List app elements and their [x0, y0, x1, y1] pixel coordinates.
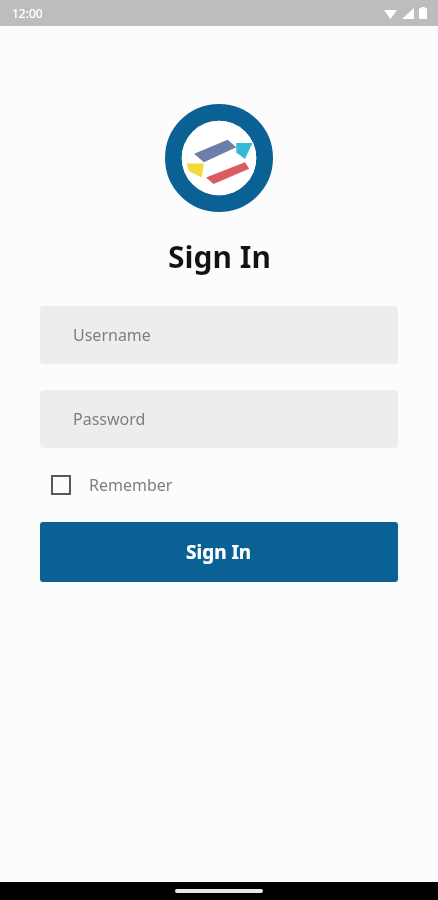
- staticText: Sign In: [186, 539, 252, 565]
- button[interactable]: Remember: [40, 468, 398, 502]
- staticText: Remember: [89, 474, 173, 496]
- staticText: Sign In: [168, 236, 271, 277]
- staticText: Password: [73, 408, 146, 430]
- other: Home gesture bar: [0, 882, 438, 900]
- button[interactable]: Sign In: [40, 522, 398, 582]
- staticText: Username: [73, 324, 151, 346]
- button[interactable]: Username: [40, 306, 398, 364]
- staticText: 12:00: [12, 5, 43, 21]
- button[interactable]: Password: [40, 390, 398, 448]
